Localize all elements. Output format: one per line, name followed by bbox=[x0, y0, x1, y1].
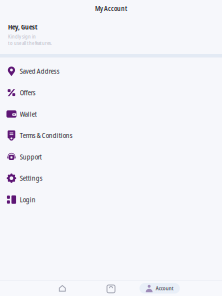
staticText: Settings bbox=[20, 174, 43, 183]
staticText: Offers bbox=[20, 88, 36, 97]
button[interactable]: Offers bbox=[0, 82, 222, 103]
staticText: My Account bbox=[95, 4, 127, 13]
button[interactable]: Login bbox=[0, 189, 222, 210]
button[interactable]: Settings bbox=[0, 167, 222, 189]
button[interactable]: Terms & Conditions bbox=[0, 125, 222, 146]
button[interactable]: Support bbox=[0, 146, 222, 167]
staticText: Wallet bbox=[20, 109, 37, 119]
button[interactable]: Saved Address bbox=[0, 60, 222, 82]
button[interactable]: Home bbox=[38, 281, 87, 296]
button[interactable]: Account bbox=[135, 281, 184, 296]
staticText: Account bbox=[156, 285, 174, 292]
button[interactable]: Orders bbox=[87, 281, 135, 296]
staticText: Kindly sign in bbox=[8, 33, 36, 40]
staticText: Saved Address bbox=[20, 67, 60, 76]
staticText: to use all the features. bbox=[8, 39, 52, 46]
button[interactable]: Wallet bbox=[0, 103, 222, 125]
staticText: Support bbox=[20, 152, 42, 161]
staticText: Terms & Conditions bbox=[20, 131, 73, 140]
staticText: Login bbox=[20, 195, 36, 204]
staticText: Hey, Guest bbox=[8, 22, 37, 32]
